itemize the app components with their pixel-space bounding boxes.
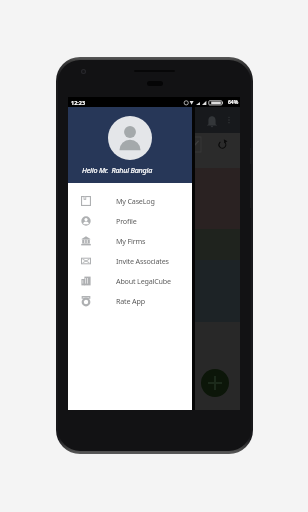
staticText: Hello Mr. Rahul Bangia: [82, 165, 153, 175]
staticText: Profile: [116, 216, 137, 226]
button[interactable]: My CaseLog: [68, 191, 192, 211]
staticText: 64%: [228, 99, 239, 106]
button[interactable]: Add: [201, 369, 229, 397]
staticText: Invite Associates: [116, 256, 169, 266]
button[interactable]: More options: [223, 114, 235, 126]
button[interactable]: Profile: [68, 211, 192, 231]
button[interactable]: Select: [186, 137, 201, 152]
button[interactable]: Invite Associates: [68, 251, 192, 271]
staticText: About LegalCube: [116, 276, 171, 286]
staticText: My Firms: [116, 236, 146, 246]
staticText: 12:23: [71, 99, 86, 106]
staticText: My CaseLog: [116, 196, 155, 206]
button[interactable]: Rate App: [68, 291, 192, 311]
button[interactable]: My Firms: [68, 231, 192, 251]
staticText: Rate App: [116, 296, 145, 306]
button[interactable]: Refresh: [217, 139, 228, 150]
button[interactable]: About LegalCube: [68, 271, 192, 291]
button[interactable]: Notifications: [206, 115, 218, 128]
